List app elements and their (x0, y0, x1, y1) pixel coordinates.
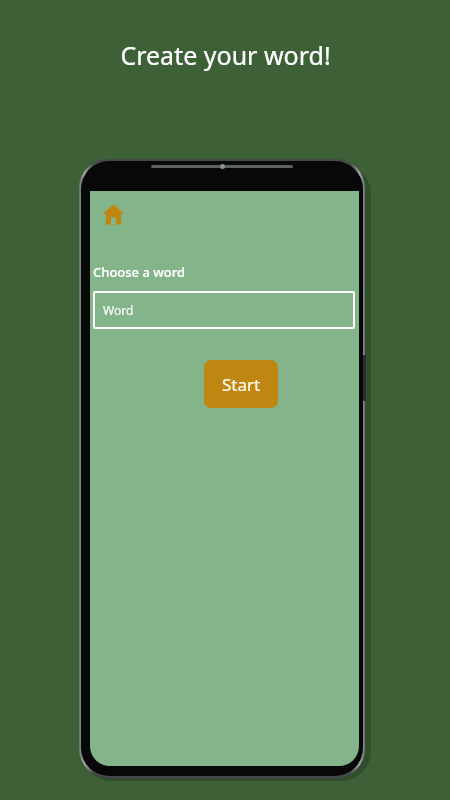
button[interactable]: Home (92, 193, 134, 235)
button[interactable]: Word (93, 291, 355, 329)
staticText: Create your word! (120, 38, 331, 72)
staticText: Choose a word (93, 263, 186, 281)
button[interactable]: Start (204, 360, 278, 408)
staticText: Word (103, 302, 134, 318)
staticText: Start (222, 373, 261, 396)
